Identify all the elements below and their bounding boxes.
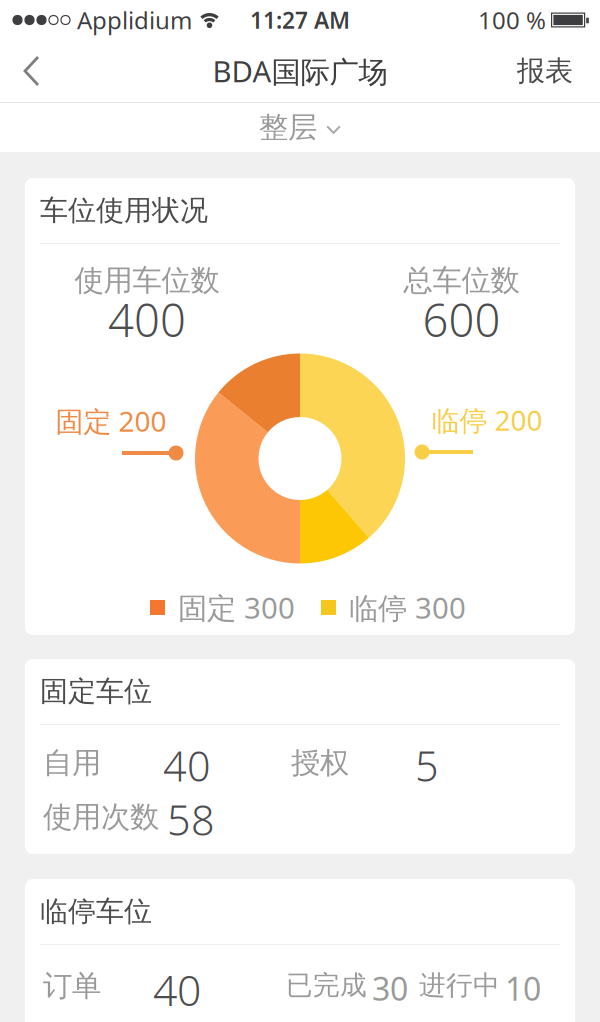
staticText: 车位使用状况	[40, 193, 208, 228]
staticText: Applidium	[77, 4, 192, 36]
staticText: 40	[153, 961, 201, 1018]
staticText: 报表	[517, 54, 573, 88]
staticText: 临停 200	[431, 401, 542, 439]
staticText: 10	[505, 967, 541, 1009]
staticText: 58	[167, 792, 215, 847]
staticText: 进行中	[419, 969, 500, 1002]
button[interactable]: Back	[0, 44, 54, 98]
staticText: 总车位数	[403, 262, 519, 298]
staticText: 整层	[259, 109, 317, 145]
button[interactable]: 报表	[505, 54, 600, 88]
button[interactable]: 整层	[0, 103, 600, 152]
staticText: 使用车位数	[74, 262, 219, 298]
staticText: 600	[422, 289, 500, 350]
staticText: 30	[372, 967, 408, 1009]
staticText: 40	[163, 738, 211, 793]
staticText: 固定 300	[178, 588, 295, 627]
staticText: 自用	[43, 745, 101, 781]
staticText: 固定 200	[55, 402, 166, 440]
staticText: 固定车位	[40, 674, 152, 709]
staticText: 授权	[291, 745, 349, 781]
staticText: 订单	[43, 968, 101, 1004]
staticText: 临停 300	[349, 588, 466, 627]
staticText: BDA国际广场	[212, 51, 387, 90]
staticText: 5	[415, 738, 439, 793]
staticText: 11:27 AM	[250, 5, 350, 35]
staticText: 已完成	[286, 969, 367, 1002]
staticText: 临停车位	[40, 894, 152, 929]
staticText: 400	[108, 289, 186, 350]
staticText: 100 %	[478, 4, 546, 36]
staticText: 使用次数	[43, 799, 159, 835]
